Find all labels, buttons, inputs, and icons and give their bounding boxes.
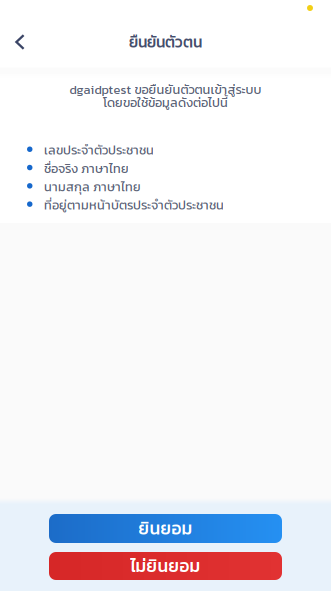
staticText: โดยขอใช้ข้อมูลดังต่อไปนี้ — [103, 93, 228, 112]
staticText: นามสกุล ภาษาไทย — [44, 177, 141, 196]
staticText: ไม่ยินยอม — [130, 553, 200, 579]
staticText: dgaidptest ขอยืนยันตัวตนเข้าสู่ระบบ — [69, 80, 261, 99]
button[interactable]: ยินยอม — [49, 514, 282, 543]
staticText: ยืนยันตัวตน — [129, 30, 202, 53]
staticText: ชื่อจริง ภาษาไทย — [44, 159, 129, 178]
button[interactable]: ไม่ยินยอม — [49, 552, 282, 580]
staticText: ที่อยู่ตามหน้าบัตรประจำตัวประชาชน — [44, 196, 224, 214]
button[interactable]: Back — [0, 25, 40, 59]
staticText: ยินยอม — [138, 515, 192, 541]
staticText: เลขประจำตัวประชาชน — [44, 141, 154, 160]
